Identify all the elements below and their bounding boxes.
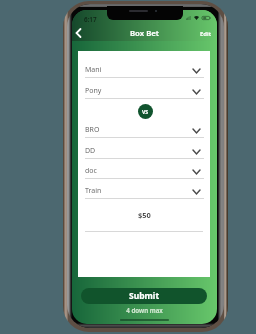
button[interactable]: Submit (81, 288, 207, 304)
staticText: Submit (129, 290, 160, 302)
staticText: doc (85, 166, 97, 176)
staticText: $50 (138, 210, 151, 220)
staticText: DD (85, 146, 96, 156)
button[interactable]: Pony (78, 78, 210, 99)
button[interactable]: Back (72, 23, 88, 42)
button[interactable]: BRO (78, 117, 210, 138)
staticText: BRO (85, 125, 100, 135)
staticText: 6:17 (84, 15, 97, 24)
button[interactable]: Edit (200, 30, 212, 38)
staticText: Train (85, 186, 102, 196)
staticText: VS (142, 108, 149, 115)
staticText: Edit (200, 30, 212, 38)
staticText: Pony (85, 86, 102, 96)
button[interactable]: DD (78, 138, 210, 159)
button[interactable]: Train (78, 179, 210, 199)
staticText: Mani (85, 65, 102, 75)
button[interactable]: Mani (78, 57, 210, 78)
button[interactable]: doc (78, 159, 210, 179)
staticText: 4 down max (72, 306, 217, 314)
staticText: Box Bet (72, 28, 217, 39)
